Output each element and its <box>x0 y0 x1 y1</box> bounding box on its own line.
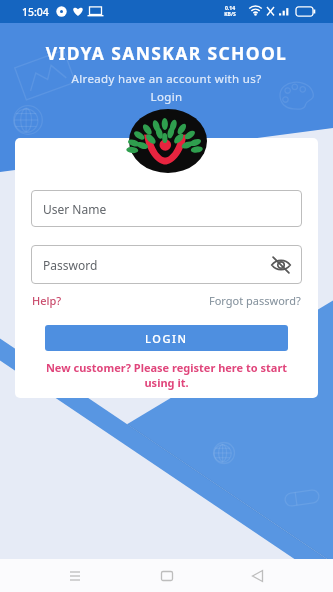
button[interactable]: New customer? Please register here to st… <box>31 360 302 390</box>
staticText: Password <box>43 257 98 273</box>
staticText: Login <box>0 89 333 105</box>
button[interactable]: Recents <box>58 559 92 592</box>
button[interactable]: Forgot password? <box>209 293 301 308</box>
staticText: 0.14 KB/S <box>224 5 236 18</box>
button[interactable]: Show password <box>270 254 292 276</box>
button[interactable]: Home <box>150 559 184 592</box>
button[interactable]: Password <box>31 245 302 284</box>
button[interactable]: LOGIN <box>45 325 288 351</box>
staticText: User Name <box>43 201 107 217</box>
staticText: VIDYA SANSKAR SCHOOL <box>0 41 333 65</box>
staticText: Already have an account with us? <box>0 71 333 87</box>
staticText: 15:04 <box>22 5 49 19</box>
button[interactable]: Help? <box>32 293 62 308</box>
button[interactable]: User Name <box>31 190 302 227</box>
staticText: LOGIN <box>145 331 188 346</box>
button[interactable]: Back <box>241 559 275 592</box>
